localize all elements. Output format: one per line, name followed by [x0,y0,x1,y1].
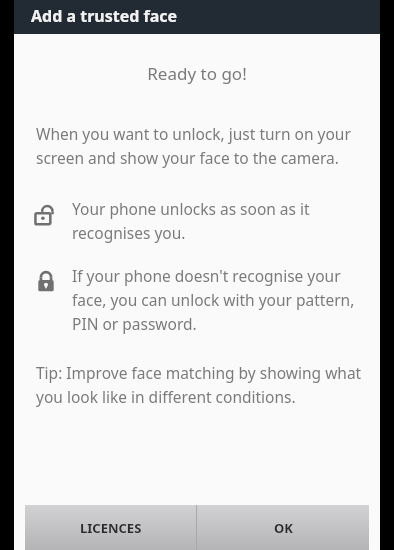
staticText: LICENCES [80,519,142,537]
other: Unlocked [34,202,58,226]
staticText: Tip: Improve face matching by showing wh… [36,362,366,407]
staticText: Ready to go! [14,62,380,85]
staticText: When you want to unlock, just turn on yo… [36,123,360,168]
button[interactable]: OK [197,505,369,550]
staticText: If your phone doesn't recognise your fac… [72,265,364,334]
other: Locked [34,269,58,293]
staticText: OK [274,519,293,537]
staticText: Add a trusted face [31,5,178,27]
staticText: Your phone unlocks as soon as it recogni… [72,198,360,243]
button[interactable]: LICENCES [25,505,196,550]
